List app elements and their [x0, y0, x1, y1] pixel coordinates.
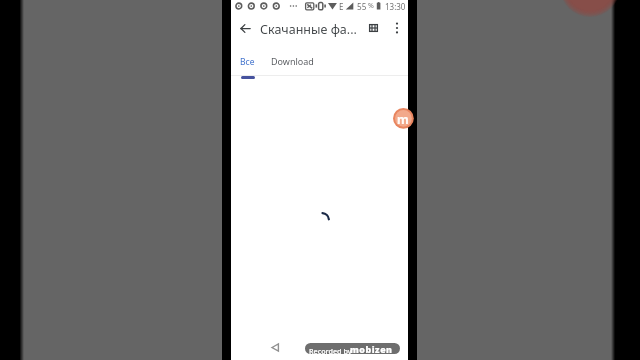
button[interactable]: Все: [233, 46, 261, 78]
staticText: %: [368, 1, 374, 11]
staticText: 55: [357, 1, 367, 12]
staticText: Recorded by: [309, 346, 352, 354]
button[interactable]: Screen recorder: [393, 108, 415, 130]
staticText: Download: [271, 55, 314, 67]
staticText: Скачанные фа...: [260, 21, 357, 38]
staticText: Все: [240, 56, 255, 68]
staticText: 13:30: [385, 1, 406, 12]
staticText: m: [397, 111, 409, 127]
button[interactable]: Download: [268, 45, 316, 77]
staticText: mobizen: [350, 344, 393, 354]
staticText: E: [339, 1, 344, 12]
button[interactable]: Back: [233, 16, 257, 40]
button[interactable]: More options: [386, 17, 408, 39]
button[interactable]: Back: [265, 337, 285, 357]
button[interactable]: Grid view: [362, 17, 384, 39]
